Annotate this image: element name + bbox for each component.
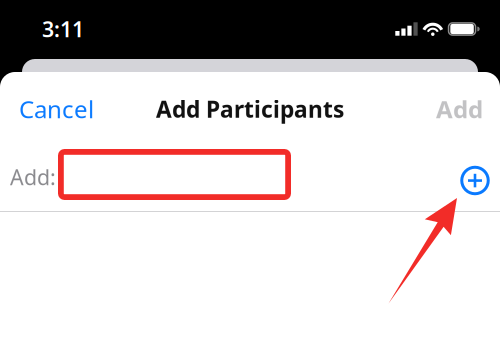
- staticText: 3:11: [42, 15, 84, 43]
- button[interactable]: Cancel: [17, 87, 96, 131]
- staticText: Add:: [10, 163, 56, 191]
- button[interactable]: Add participant: [458, 161, 492, 195]
- staticText: Add: [436, 93, 483, 125]
- staticText: Add Participants: [156, 94, 344, 124]
- button[interactable]: Add: [434, 87, 485, 131]
- staticText: Cancel: [19, 93, 94, 125]
